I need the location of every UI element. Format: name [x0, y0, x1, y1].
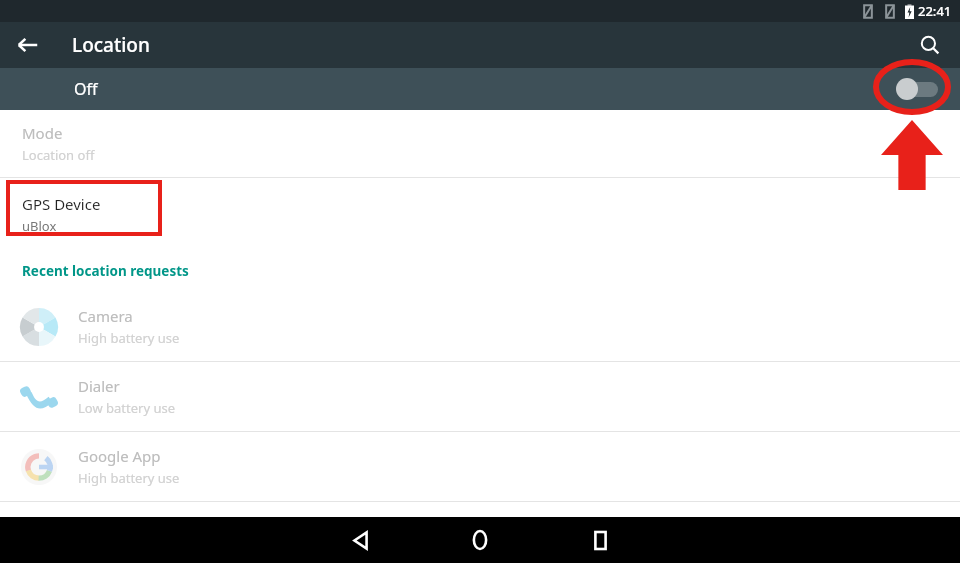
staticText: Recent location requests	[22, 262, 189, 280]
button[interactable]: Recent apps	[570, 517, 630, 563]
staticText: Off	[74, 78, 98, 100]
staticText: Camera	[78, 306, 133, 326]
button[interactable]: Back	[8, 25, 48, 65]
staticText: Dialer	[78, 376, 120, 396]
button[interactable]: Google App	[0, 432, 960, 501]
button[interactable]: LocationServices	[0, 502, 960, 563]
staticText: High battery use	[78, 469, 180, 487]
button[interactable]: Home	[450, 517, 510, 563]
staticText: Google App	[78, 446, 161, 466]
button[interactable]: Camera	[0, 292, 960, 361]
staticText: 22:41	[918, 2, 952, 20]
button[interactable]: Off	[0, 68, 960, 110]
staticText: GPS Device	[22, 194, 101, 214]
button[interactable]: Dialer	[0, 362, 960, 431]
button[interactable]: GPS Device	[0, 178, 960, 250]
button[interactable]: Search	[910, 25, 950, 65]
staticText: Low battery use	[78, 399, 175, 417]
staticText: High battery use	[78, 329, 180, 347]
staticText: Location	[72, 32, 150, 58]
button[interactable]: Back	[330, 517, 390, 563]
staticText: uBlox	[22, 217, 57, 235]
staticText: Location off	[22, 146, 95, 164]
staticText: Mode	[22, 123, 63, 143]
button[interactable]: Mode	[0, 110, 960, 177]
